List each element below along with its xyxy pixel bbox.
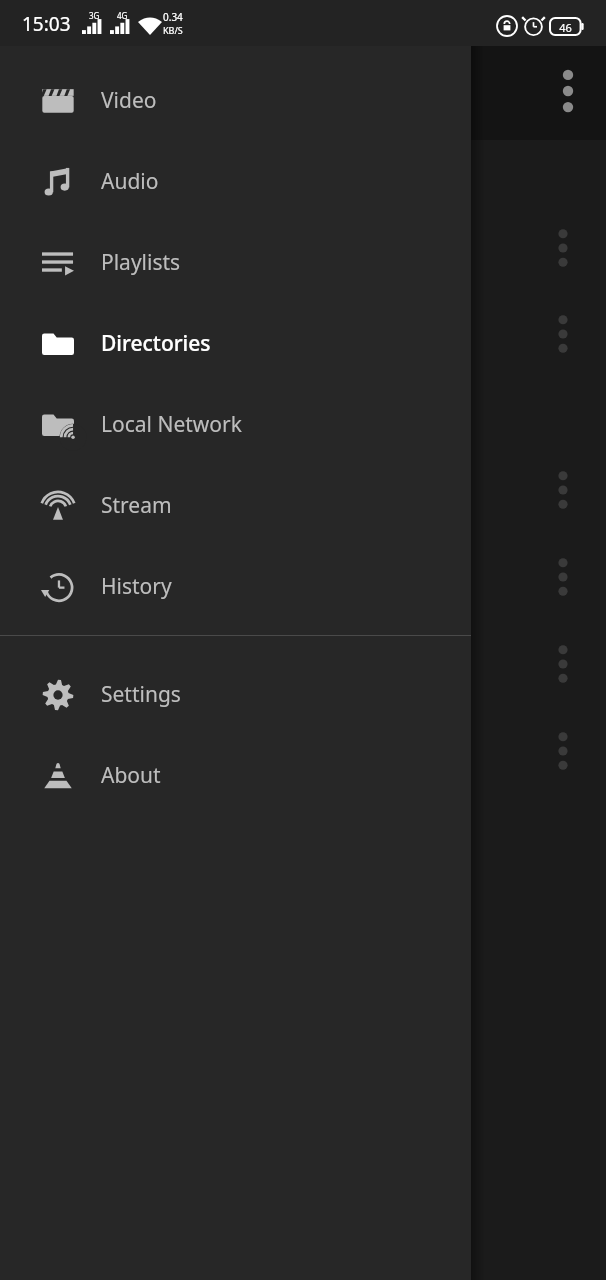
button[interactable]: Directories <box>0 303 471 384</box>
staticText: Audio <box>101 167 159 196</box>
staticText: Local Network <box>101 410 242 439</box>
button[interactable]: More options <box>545 68 591 114</box>
button[interactable]: Stream <box>0 465 471 546</box>
staticText: Playlists <box>101 248 181 277</box>
button[interactable]: About <box>0 735 471 816</box>
button[interactable]: Playlists <box>0 222 471 303</box>
button[interactable]: Settings <box>0 654 471 735</box>
button[interactable]: More options <box>540 554 586 600</box>
staticText: Stream <box>101 491 172 520</box>
button[interactable]: History <box>0 546 471 627</box>
staticText: 3G <box>89 10 100 21</box>
button[interactable]: More options <box>540 467 586 513</box>
staticText: 15:03 <box>22 11 71 37</box>
button[interactable]: Local Network <box>0 384 471 465</box>
staticText: Video <box>101 86 157 115</box>
button[interactable]: Audio <box>0 141 471 222</box>
button[interactable]: More options <box>540 311 586 357</box>
button[interactable]: More options <box>540 728 586 774</box>
staticText: Directories <box>101 329 211 358</box>
button[interactable]: More options <box>540 225 586 271</box>
staticText: 0.34 <box>163 10 183 24</box>
staticText: 4G <box>117 10 128 21</box>
button[interactable]: Video <box>0 60 471 141</box>
staticText: Settings <box>101 680 181 709</box>
staticText: About <box>101 761 161 790</box>
staticText: 46 <box>550 20 581 35</box>
button[interactable]: More options <box>540 641 586 687</box>
staticText: History <box>101 572 172 601</box>
staticText: KB/S <box>163 24 183 36</box>
